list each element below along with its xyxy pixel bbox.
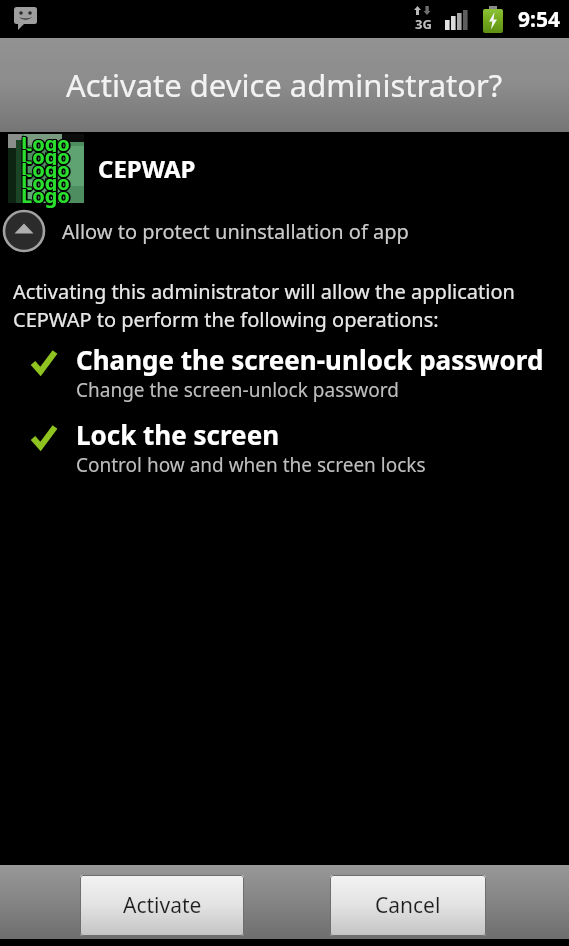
staticText: Logo xyxy=(20,170,69,197)
staticText: Logo xyxy=(21,132,70,159)
staticText: Logo xyxy=(20,142,69,169)
staticText: Logo xyxy=(21,169,70,196)
staticText: Logo xyxy=(23,130,72,157)
staticText: Logo xyxy=(21,143,70,170)
staticText: Logo xyxy=(21,168,70,195)
staticText: Logo xyxy=(22,129,71,156)
staticText: Logo xyxy=(20,129,69,156)
staticText: Logo xyxy=(21,182,70,209)
staticText: Logo xyxy=(21,142,70,169)
staticText: Logo xyxy=(23,143,72,170)
staticText: Logo xyxy=(22,142,71,169)
staticText: Activate device administrator? xyxy=(66,64,503,106)
staticText: Logo xyxy=(21,184,70,211)
staticText: Logo xyxy=(21,156,70,183)
staticText: Cancel xyxy=(375,891,441,920)
staticText: Logo xyxy=(20,183,69,210)
staticText: Change the screen-unlock password xyxy=(76,342,544,377)
staticText: Logo xyxy=(20,169,69,196)
staticText: Logo xyxy=(22,170,71,197)
staticText: Logo xyxy=(21,129,70,156)
staticText: Logo xyxy=(21,145,70,172)
staticText: Logo xyxy=(21,181,70,208)
staticText: Logo xyxy=(20,156,69,183)
button[interactable]: Change the screen-unlock password xyxy=(0,342,569,403)
staticText: Logo xyxy=(21,158,70,185)
staticText: Logo xyxy=(22,157,71,184)
staticText: 9:54 xyxy=(518,5,560,34)
staticText: Logo xyxy=(20,131,69,158)
staticText: Logo xyxy=(20,181,69,208)
staticText: Logo xyxy=(22,144,71,171)
staticText: Control how and when the screen locks xyxy=(76,452,426,478)
staticText: Logo xyxy=(23,169,72,196)
button[interactable]: Activate xyxy=(80,875,244,936)
staticText: Logo xyxy=(20,144,69,171)
staticText: Logo xyxy=(20,157,69,184)
staticText: Allow to protect uninstallation of app xyxy=(62,218,409,245)
staticText: Logo xyxy=(20,143,69,170)
staticText: Change the screen-unlock password xyxy=(76,377,399,403)
staticText: Logo xyxy=(22,155,71,182)
staticText: Logo xyxy=(22,181,71,208)
staticText: Logo xyxy=(23,182,72,209)
staticText: Logo xyxy=(20,130,69,157)
staticText: Logo xyxy=(21,130,70,157)
staticText: Logo xyxy=(22,168,71,195)
staticText: 3G xyxy=(415,15,432,33)
staticText: Activating this administrator will allow… xyxy=(13,278,515,333)
button[interactable]: Lock the screen xyxy=(0,417,569,478)
staticText: Logo xyxy=(21,171,70,198)
button[interactable]: Allow to protect uninstallation of app xyxy=(0,209,409,253)
staticText: Lock the screen xyxy=(76,417,280,452)
staticText: Logo xyxy=(20,182,69,209)
staticText: Logo xyxy=(20,155,69,182)
staticText: CEPWAP xyxy=(98,152,196,185)
staticText: Logo xyxy=(22,131,71,158)
staticText: Logo xyxy=(22,183,71,210)
button[interactable]: Cancel xyxy=(330,875,486,936)
staticText: Logo xyxy=(20,168,69,195)
staticText: Logo xyxy=(23,156,72,183)
staticText: Activate xyxy=(123,891,202,920)
staticText: Logo xyxy=(21,155,70,182)
